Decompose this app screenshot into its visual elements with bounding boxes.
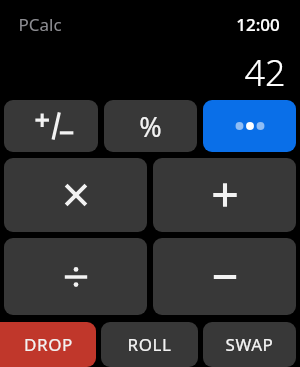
button[interactable]: Subtract	[153, 238, 296, 315]
button[interactable]: Divide	[4, 238, 147, 315]
button[interactable]: Plus minus	[4, 100, 98, 152]
staticText: PCalc	[18, 13, 62, 36]
staticText: DROP	[24, 333, 73, 356]
staticText: SWAP	[225, 333, 274, 356]
button[interactable]: ROLL	[101, 322, 198, 367]
button[interactable]: Add	[153, 158, 296, 232]
button[interactable]: Percent	[104, 100, 197, 152]
staticText: 42	[244, 48, 286, 92]
button[interactable]: More options	[203, 100, 296, 152]
button[interactable]: DROP	[0, 322, 96, 367]
staticText: ROLL	[127, 333, 172, 356]
button[interactable]: SWAP	[203, 322, 296, 367]
button[interactable]: Multiply	[4, 158, 147, 232]
staticText: %	[139, 108, 162, 145]
staticText: 12:00	[236, 13, 280, 36]
